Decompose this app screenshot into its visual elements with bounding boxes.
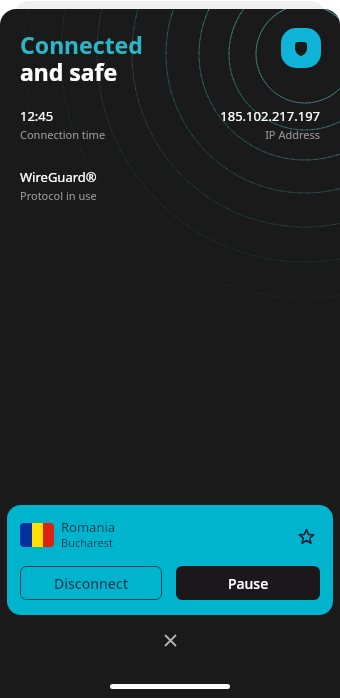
staticText: Disconnect — [54, 574, 129, 593]
button[interactable]: Disconnect — [20, 566, 162, 600]
staticText: IP Address — [0, 127, 320, 142]
button[interactable]: VPN shield — [281, 28, 321, 68]
staticText: Bucharest — [61, 535, 113, 550]
staticText: and safe — [20, 56, 118, 87]
staticText: 12:45 — [20, 107, 54, 125]
staticText: Protocol in use — [20, 188, 97, 203]
staticText: Connection time — [20, 127, 106, 142]
button[interactable]: Close — [155, 625, 185, 655]
staticText: 185.102.217.197 — [0, 107, 320, 125]
staticText: Pause — [228, 574, 269, 593]
button[interactable]: Add to favorites — [294, 524, 318, 548]
staticText: Connected — [20, 29, 143, 60]
staticText: WireGuard® — [20, 168, 97, 186]
button[interactable]: Pause — [176, 566, 320, 600]
staticText: Romania — [61, 518, 116, 536]
